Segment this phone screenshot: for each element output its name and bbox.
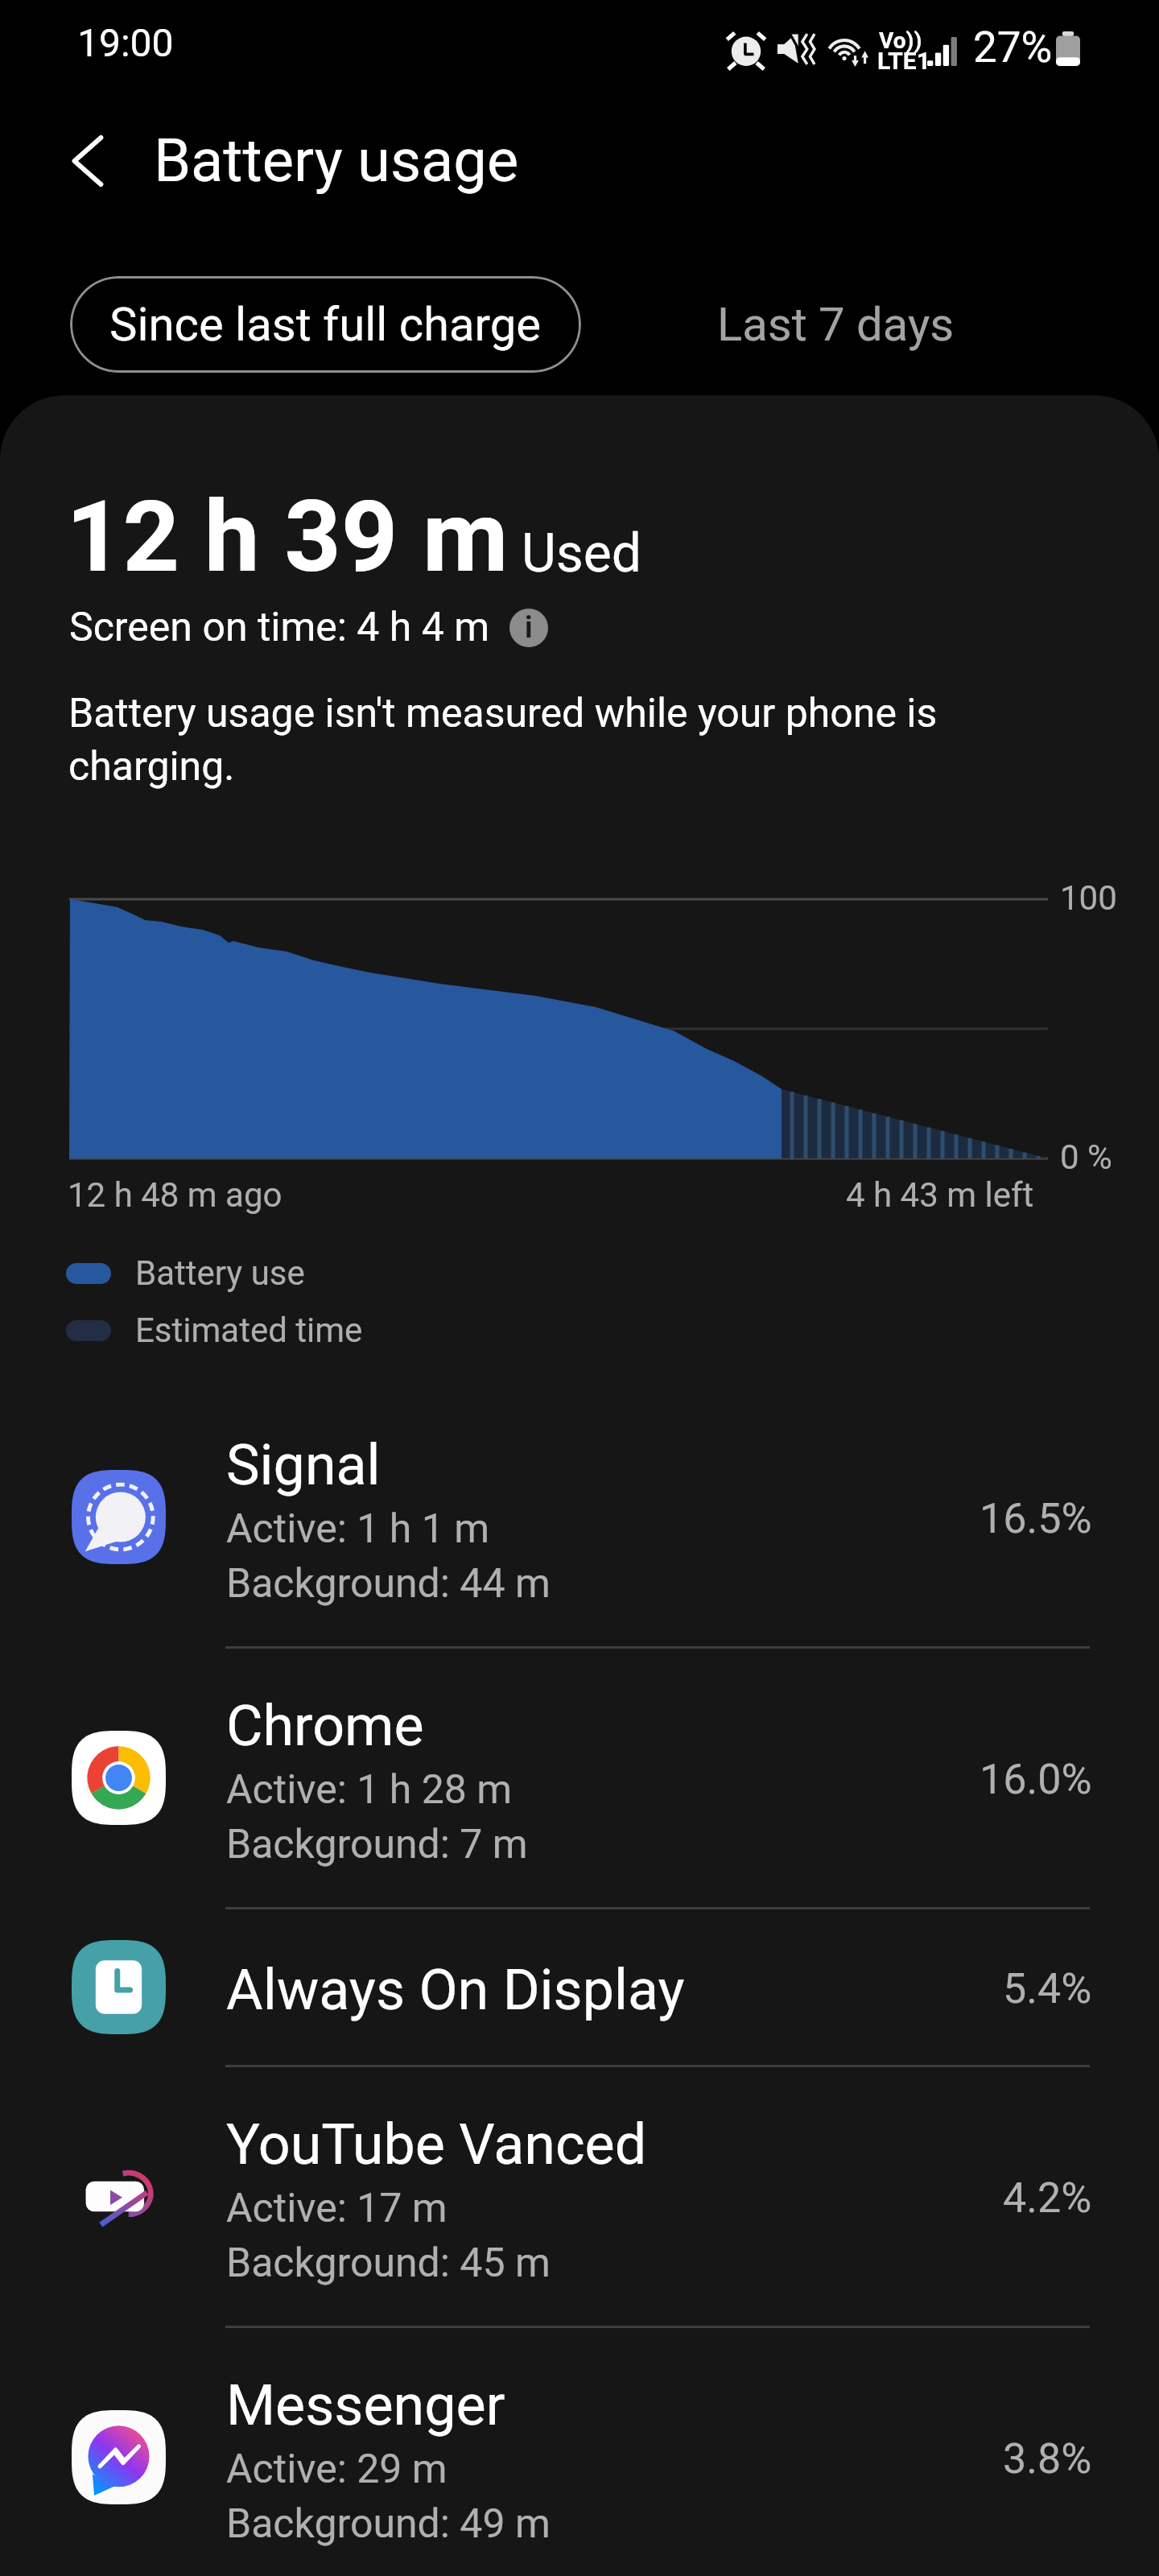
staticText: Background: 49 m: [226, 2500, 551, 2548]
staticText: Messenger: [226, 2372, 505, 2438]
staticText: Battery usage: [154, 126, 519, 196]
staticText: Screen on time: 4 h 4 m: [69, 604, 490, 651]
staticText: Active: 1 h 28 m: [226, 1766, 513, 1814]
staticText: Active: 17 m: [226, 2185, 448, 2232]
staticText: Battery use: [135, 1253, 305, 1293]
button[interactable]: Back: [44, 117, 133, 205]
staticText: Battery usage isn't measured while your …: [68, 690, 938, 790]
staticText: 5.4%: [1003, 1964, 1092, 2013]
staticText: LTE1: [877, 47, 930, 75]
staticText: Vo)): [879, 27, 922, 54]
button[interactable]: Last 7 days: [674, 276, 996, 373]
staticText: Since last full charge: [109, 297, 542, 352]
staticText: Background: 7 m: [226, 1821, 528, 1868]
staticText: 12 h 48 m ago: [68, 1175, 283, 1215]
button[interactable]: YouTube Vanced: [0, 2067, 1159, 2326]
staticText: 19:00: [77, 20, 174, 65]
staticText: 16.5%: [980, 1494, 1092, 1543]
button[interactable]: Chrome: [0, 1649, 1159, 1907]
staticText: Background: 44 m: [226, 1560, 551, 1608]
staticText: Used: [522, 522, 642, 584]
staticText: 4 h 43 m left: [846, 1175, 1034, 1215]
staticText: 4.2%: [1003, 2173, 1092, 2223]
button[interactable]: Signal: [0, 1388, 1159, 1646]
staticText: 27%: [973, 23, 1053, 72]
staticText: 12 h 39 m: [66, 479, 509, 595]
staticText: 3.8%: [1003, 2434, 1092, 2483]
staticText: YouTube Vanced: [226, 2112, 647, 2178]
button[interactable]: Messenger: [0, 2328, 1159, 2576]
button[interactable]: Since last full charge: [70, 276, 581, 373]
staticText: Signal: [226, 1432, 381, 1498]
staticText: i: [525, 611, 533, 645]
staticText: 100: [1060, 878, 1117, 918]
staticText: Chrome: [226, 1693, 424, 1759]
staticText: Always On Display: [226, 1957, 685, 2023]
button[interactable]: Always On Display: [0, 1909, 1159, 2065]
staticText: Last 7 days: [717, 297, 955, 352]
staticText: Active: 29 m: [226, 2446, 448, 2493]
staticText: 16.0%: [980, 1755, 1092, 1804]
staticText: Estimated time: [135, 1311, 363, 1350]
button[interactable]: Info: [509, 609, 548, 647]
staticText: Active: 1 h 1 m: [226, 1505, 490, 1553]
staticText: 0 %: [1060, 1137, 1112, 1177]
staticText: Background: 45 m: [226, 2240, 551, 2287]
